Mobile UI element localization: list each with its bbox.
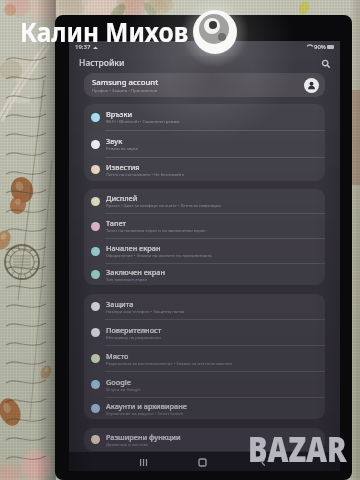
staticText: Звук	[106, 136, 123, 146]
staticText: Настройки	[79, 57, 125, 69]
button[interactable]: Samsung account	[84, 73, 325, 97]
button[interactable]: Заключен екран	[84, 264, 325, 285]
button[interactable]: Начален екран	[84, 239, 325, 263]
button[interactable]: Акаунти и архивиране	[84, 398, 325, 419]
staticText: Защита	[106, 299, 134, 309]
staticText: Разширени функции	[106, 432, 181, 442]
staticText: Тип заключен екран	[106, 277, 148, 283]
staticText: Google	[106, 377, 131, 387]
staticText: 90%	[314, 43, 326, 51]
staticText: Управление на акаунти • Smart Switch	[106, 411, 184, 417]
button[interactable]: Връзки	[84, 104, 325, 130]
staticText: Калин Михов	[20, 12, 188, 49]
staticText: Тапет на началния екран и на заключения …	[106, 228, 206, 234]
button[interactable]: Известия	[84, 158, 325, 181]
staticText: Известия	[106, 162, 140, 172]
staticText: Samsung account	[92, 77, 159, 88]
staticText: Намери моя телефон • Защитна папка	[106, 309, 185, 315]
staticText: Заключен екран	[106, 267, 165, 277]
button[interactable]: Search	[318, 56, 333, 71]
staticText: Връзки	[106, 109, 133, 119]
button[interactable]: Home	[193, 453, 211, 471]
staticText: 19:37	[75, 43, 91, 51]
button[interactable]: Profile	[304, 78, 319, 93]
staticText: Мениджър на разрешения	[106, 335, 161, 341]
button[interactable]: Дисплей	[84, 189, 325, 213]
staticText: Профил • Защита • Приложения	[92, 88, 158, 94]
staticText: Поверителност	[106, 325, 162, 335]
staticText: Движения и жестове	[106, 442, 149, 448]
staticText: Място	[106, 351, 129, 361]
button[interactable]: Recent apps	[134, 453, 152, 471]
button[interactable]: Тапет	[84, 214, 325, 238]
button[interactable]: Разширени функции	[84, 428, 325, 451]
button[interactable]: Защита	[84, 294, 325, 319]
staticText: Wi-Fi • Bluetooth • Самолетен режим	[106, 119, 180, 125]
button[interactable]: Място	[84, 346, 325, 371]
staticText: Услуги на Google	[106, 387, 141, 393]
staticText: Яркост • Цвят за комфорт на очите • Лент…	[106, 203, 221, 209]
staticText: Дисплей	[106, 193, 138, 203]
staticText: Оформление • Значки на иконите на прилож…	[106, 253, 212, 259]
button[interactable]: Google	[84, 372, 325, 397]
staticText: Лента на състоянието • Не безпокойте	[106, 172, 185, 178]
staticText: Начален екран	[106, 243, 161, 253]
button[interactable]: Back	[254, 453, 272, 471]
staticText: Акаунти и архивиране	[106, 401, 187, 411]
staticText: Разрешения за местоположение • Заявки за…	[106, 361, 232, 367]
button[interactable]: Звук	[84, 131, 325, 157]
staticText: Режим на звука	[106, 146, 138, 152]
staticText: Тапет	[106, 218, 126, 228]
button[interactable]: Поверителност	[84, 320, 325, 345]
staticText: BAZAR	[248, 424, 347, 471]
